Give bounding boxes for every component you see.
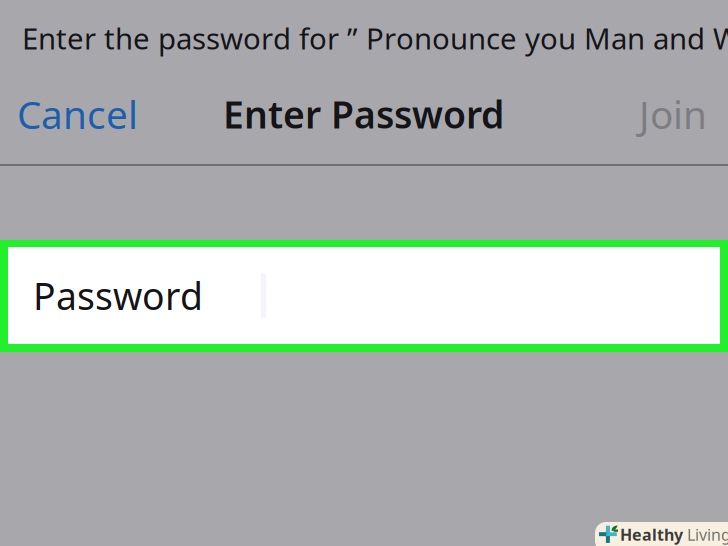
- staticText: Enter Password: [223, 89, 504, 139]
- button[interactable]: Cancel: [17, 86, 157, 142]
- staticText: Living: [683, 524, 728, 545]
- button[interactable]: Password: [0, 247, 728, 344]
- button[interactable]: Join: [617, 86, 707, 142]
- staticText: Enter the password for ” Pronounce you M…: [22, 18, 728, 57]
- staticText: Cancel: [17, 88, 138, 140]
- staticText: Join: [639, 88, 707, 140]
- staticText: Password: [33, 271, 203, 320]
- staticText: Healthy: [620, 524, 683, 545]
